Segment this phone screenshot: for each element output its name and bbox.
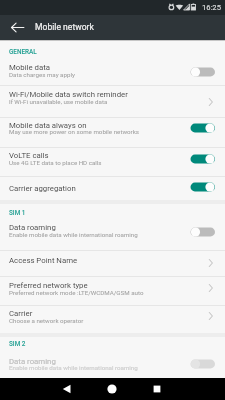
button[interactable]: Recents: [145, 378, 169, 400]
button[interactable]: Back: [5, 15, 30, 40]
staticText: SIM 2: [9, 340, 26, 348]
staticText: Choose a network operator: [9, 317, 185, 324]
staticText: Data charges may apply: [9, 71, 185, 78]
staticText: SIM 1: [9, 209, 26, 217]
button[interactable]: Carrier aggregation: [0, 177, 225, 200]
staticText: Data roaming: [9, 357, 169, 366]
staticText: If Wi-Fi unavailable, use mobile data: [9, 98, 185, 105]
staticText: Carrier aggregation: [9, 184, 169, 193]
staticText: Data roaming: [9, 223, 169, 232]
button[interactable]: Carrier: [0, 306, 225, 333]
staticText: GENERAL: [9, 48, 37, 56]
button[interactable]: Data roaming: [0, 219, 225, 250]
staticText: Mobile network: [35, 22, 94, 32]
staticText: May use more power on some mobile networ…: [9, 128, 185, 135]
staticText: Wi-Fi/Mobile data switch reminder: [9, 90, 169, 99]
staticText: 16:25: [202, 3, 221, 12]
staticText: Enable mobile data while international r…: [9, 364, 185, 371]
staticText: Use 4G LTE data to place HD calls: [9, 159, 185, 166]
staticText: Access Point Name: [9, 256, 169, 265]
button[interactable]: Home: [100, 378, 124, 400]
staticText: Preferred network mode :LTE/WCDMA/GSM au…: [9, 289, 185, 296]
button[interactable]: Access Point Name: [0, 251, 225, 276]
button[interactable]: Data roaming: [0, 352, 225, 378]
button[interactable]: Preferred network type: [0, 277, 225, 305]
staticText: VoLTE calls: [9, 151, 169, 160]
staticText: Mobile data always on: [9, 121, 169, 130]
button[interactable]: Back: [55, 378, 79, 400]
button[interactable]: VoLTE calls: [0, 148, 225, 176]
staticText: Mobile data: [9, 63, 169, 72]
staticText: Enable mobile data while international r…: [9, 231, 185, 238]
staticText: Carrier: [9, 309, 169, 318]
button[interactable]: Mobile data always on: [0, 118, 225, 147]
button[interactable]: Wi-Fi/Mobile data switch reminder: [0, 86, 225, 117]
staticText: Preferred network type: [9, 281, 169, 290]
button[interactable]: Mobile data: [0, 56, 225, 85]
